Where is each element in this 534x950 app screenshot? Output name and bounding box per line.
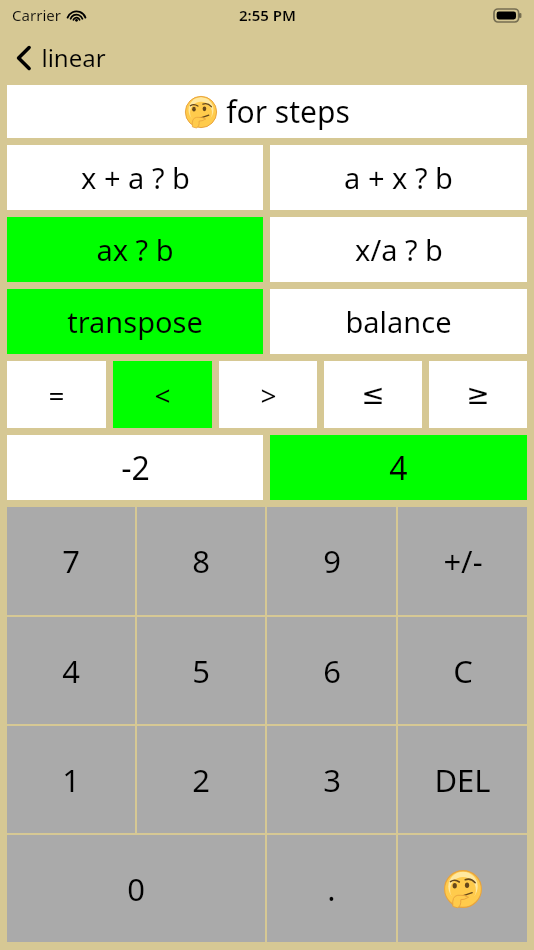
button[interactable]: 5	[137, 617, 265, 724]
button[interactable]: transpose	[7, 289, 263, 354]
staticText: for steps	[226, 91, 350, 132]
staticText: 4	[62, 650, 80, 692]
staticText: >	[260, 376, 277, 414]
staticText: .	[327, 868, 336, 910]
staticText: ax ? b	[96, 230, 174, 269]
staticText: 6	[323, 650, 341, 692]
staticText: C	[453, 650, 473, 692]
staticText: 2	[192, 759, 210, 801]
button[interactable]: ≤	[324, 361, 422, 428]
staticText: 7	[62, 540, 80, 582]
button[interactable]: =	[7, 361, 106, 428]
staticText: <	[154, 376, 171, 414]
button[interactable]: 2	[137, 726, 265, 833]
button[interactable]: ax ? b	[7, 217, 263, 282]
staticText: 9	[323, 540, 341, 582]
other: Show steps	[443, 869, 483, 909]
button[interactable]: a + x ? b	[270, 145, 527, 210]
staticText: 5	[192, 650, 210, 692]
button[interactable]: 1	[7, 726, 135, 833]
button[interactable]: 0	[7, 835, 265, 942]
staticText: DEL	[434, 759, 491, 801]
button[interactable]: >	[219, 361, 317, 428]
staticText: =	[48, 376, 65, 414]
button[interactable]: DEL	[398, 726, 527, 833]
staticText: 3	[323, 759, 341, 801]
button[interactable]: -2	[7, 435, 263, 500]
staticText: +/-	[443, 540, 483, 582]
staticText: 8	[192, 540, 210, 582]
button[interactable]: 4	[270, 435, 527, 500]
staticText: 4	[389, 446, 408, 490]
button[interactable]: ≥	[429, 361, 527, 428]
button[interactable]: 4	[7, 617, 135, 724]
staticText: balance	[345, 302, 452, 341]
button[interactable]: +/-	[398, 507, 527, 615]
staticText: x/a ? b	[355, 230, 443, 269]
staticText: x + a ? b	[81, 158, 190, 197]
button[interactable]: C	[398, 617, 527, 724]
button[interactable]: x + a ? b	[7, 145, 263, 210]
staticText: 2:55 PM	[239, 5, 296, 25]
staticText: a + x ? b	[344, 158, 453, 197]
button[interactable]: <	[113, 361, 212, 428]
staticText: 0	[127, 868, 145, 910]
button[interactable]: 3	[267, 726, 396, 833]
staticText: linear	[41, 41, 106, 74]
staticText: ≥	[466, 378, 490, 411]
staticText: -2	[121, 446, 150, 490]
staticText: transpose	[67, 302, 203, 341]
button[interactable]: 8	[137, 507, 265, 615]
button[interactable]: Show steps	[7, 85, 527, 138]
button[interactable]: Show steps	[398, 835, 527, 942]
button[interactable]: 6	[267, 617, 396, 724]
other: Show steps	[184, 95, 218, 129]
button[interactable]: balance	[270, 289, 527, 354]
button[interactable]: .	[267, 835, 396, 942]
other: Back	[16, 45, 32, 71]
staticText: Carrier	[12, 5, 61, 25]
button[interactable]: 9	[267, 507, 396, 615]
staticText: 1	[62, 759, 80, 801]
button[interactable]: 7	[7, 507, 135, 615]
staticText: ≤	[361, 378, 385, 411]
button[interactable]: x/a ? b	[270, 217, 527, 282]
button[interactable]: Back	[10, 37, 112, 78]
